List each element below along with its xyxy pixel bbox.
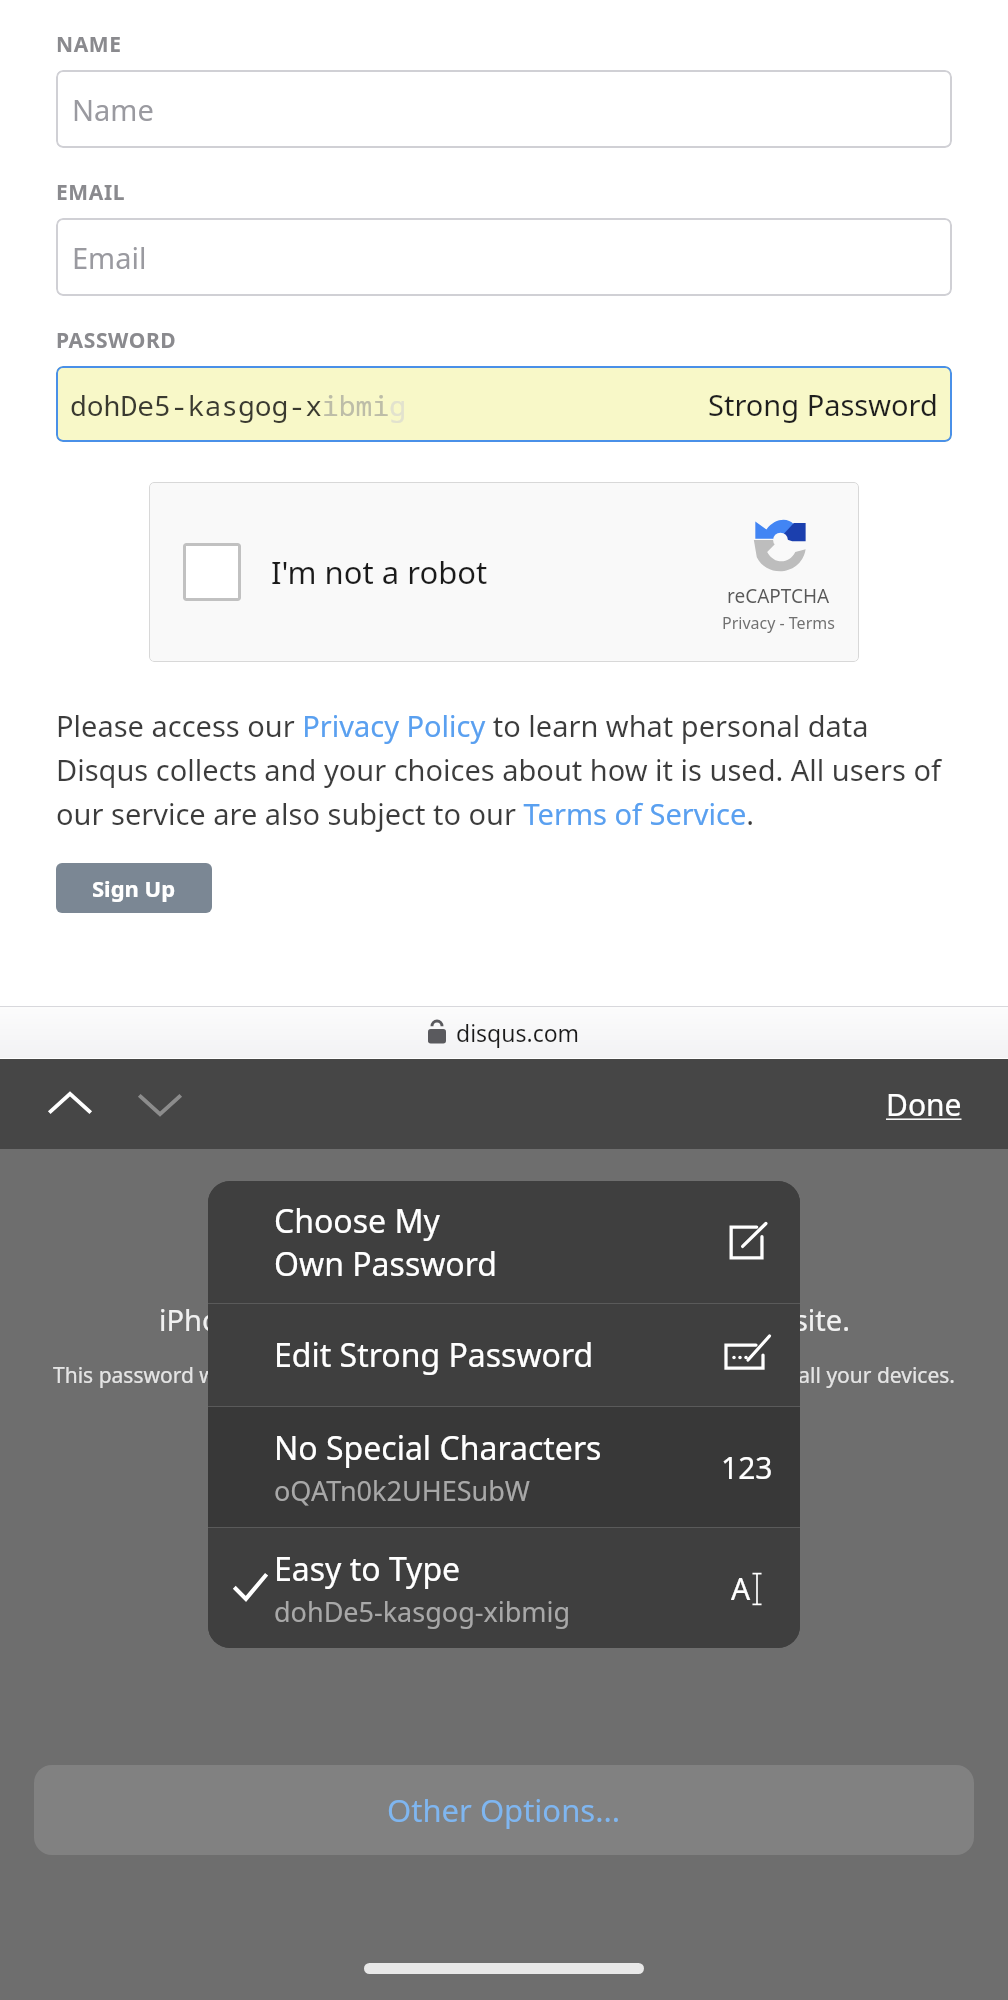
button[interactable]: Choose My Own Password bbox=[208, 1181, 800, 1303]
staticText: PASSWORD bbox=[56, 326, 177, 355]
button[interactable]: I'm not a robot checkbox bbox=[183, 543, 241, 601]
button[interactable]: Other Options... bbox=[34, 1765, 974, 1855]
button[interactable]: Email bbox=[56, 218, 952, 296]
staticText: Other Options... bbox=[387, 1789, 621, 1831]
staticText: Name bbox=[72, 90, 154, 129]
other: Edit strong password bbox=[722, 1330, 772, 1380]
staticText: disqus.com bbox=[456, 1017, 580, 1048]
staticText: I'm not a robot bbox=[271, 551, 488, 593]
staticText: Privacy - Terms bbox=[722, 612, 835, 634]
staticText: EMAIL bbox=[56, 178, 126, 207]
button[interactable]: Name bbox=[56, 70, 952, 148]
staticText: Edit Strong Password bbox=[274, 1333, 594, 1377]
staticText: No Special Characters bbox=[274, 1426, 602, 1470]
staticText: dohDe5-kasgog-xibmig bbox=[70, 386, 407, 424]
staticText: oQATn0k2UHESubW bbox=[274, 1472, 530, 1509]
staticText: 123 bbox=[721, 1447, 773, 1488]
button[interactable]: dohDe5-kasgog-xibmig bbox=[56, 366, 952, 442]
button[interactable]: Next field bbox=[130, 1074, 190, 1134]
button[interactable]: Edit Strong Password bbox=[208, 1304, 800, 1406]
staticText: iPhone created a Strong Password for thi… bbox=[159, 1300, 850, 1339]
staticText: reCAPTCHA bbox=[727, 583, 830, 609]
staticText: Please access our Privacy Policy to lear… bbox=[56, 706, 952, 833]
staticText: This password will be saved to iCloud Ke… bbox=[34, 1361, 974, 1420]
staticText: Done bbox=[886, 1084, 962, 1125]
button[interactable]: No Special Characters bbox=[208, 1407, 800, 1527]
staticText: A bbox=[731, 1568, 751, 1609]
staticText: Strong Password bbox=[708, 385, 938, 424]
button[interactable]: Easy to Type bbox=[208, 1528, 800, 1648]
staticText: Email bbox=[72, 238, 147, 277]
button[interactable]: Sign Up bbox=[56, 863, 212, 913]
staticText: Choose My Own Password bbox=[274, 1199, 497, 1285]
button[interactable]: Previous field bbox=[40, 1074, 100, 1134]
staticText: Sign Up bbox=[92, 873, 176, 903]
button[interactable]: Done bbox=[880, 1078, 968, 1131]
staticText: NAME bbox=[56, 30, 122, 59]
staticText: Easy to Type bbox=[274, 1547, 461, 1591]
staticText: dohDe5-kasgog-xibmig bbox=[274, 1593, 571, 1630]
other: Compose bbox=[725, 1220, 769, 1264]
